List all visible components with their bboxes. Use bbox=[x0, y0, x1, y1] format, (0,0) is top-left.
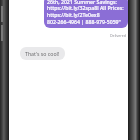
staticText: 26th, 2021 Summer Savings: https://bit.l… bbox=[47, 0, 125, 26]
button[interactable]: That's so cool! bbox=[20, 47, 65, 60]
button[interactable]: 26th, 2021 Summer Savings: https://bit.l… bbox=[44, 0, 128, 28]
staticText: That's so cool! bbox=[25, 50, 60, 57]
staticText: Delivered bbox=[109, 33, 126, 38]
